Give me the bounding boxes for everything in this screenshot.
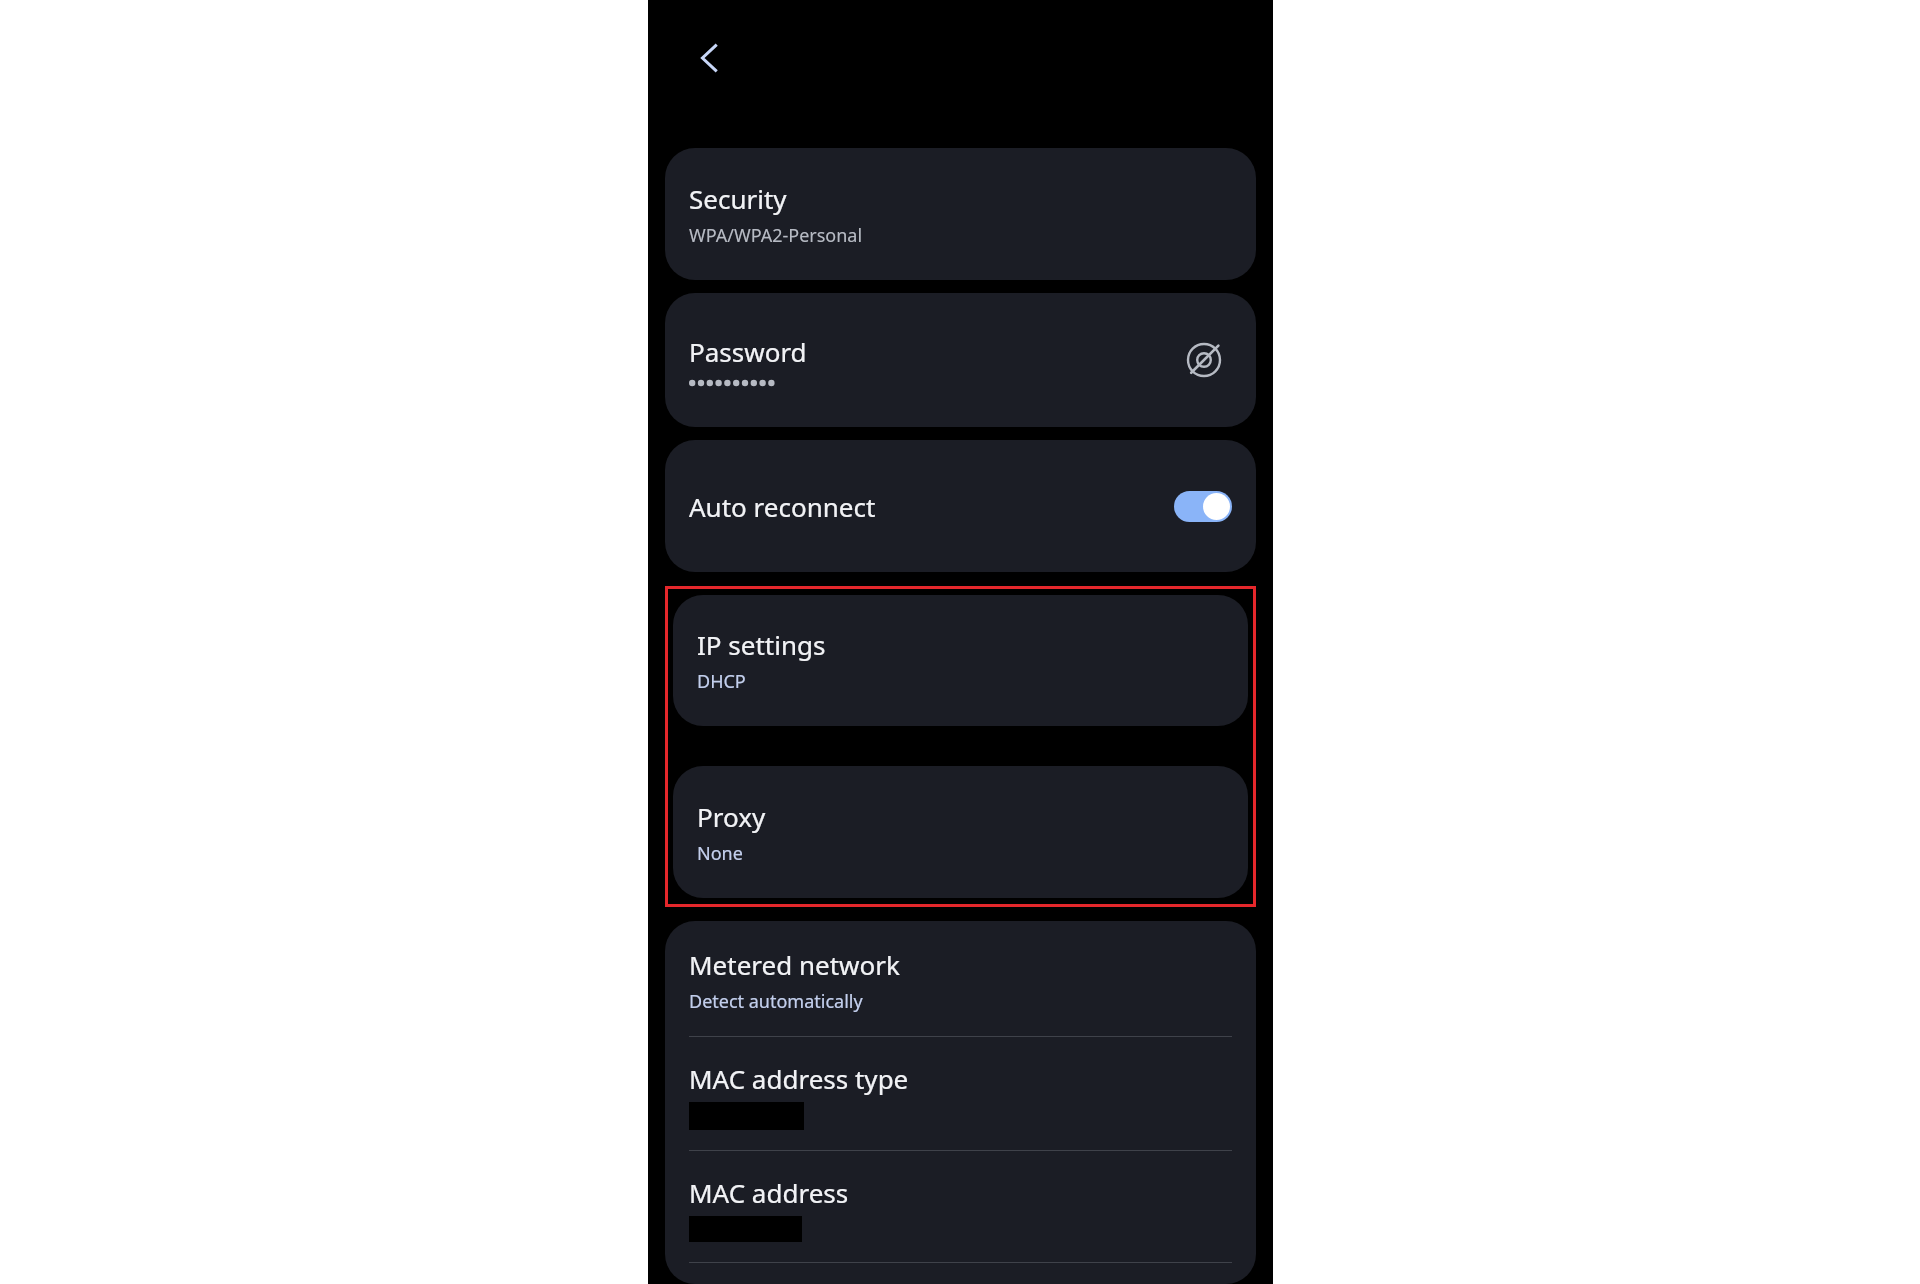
staticText: None: [697, 841, 743, 866]
button[interactable]: Metered network: [665, 921, 1256, 1036]
button[interactable]: Proxy: [673, 766, 1248, 898]
staticText: Security: [689, 181, 787, 216]
staticText: MAC address type: [689, 1061, 909, 1096]
staticText: Metered network: [689, 947, 900, 982]
button[interactable]: IP settings: [673, 595, 1248, 726]
button[interactable]: Security: [665, 148, 1256, 280]
staticText: Detect automatically: [689, 989, 863, 1014]
button[interactable]: Show password: [1176, 332, 1232, 388]
button[interactable]: MAC address: [665, 1151, 1256, 1262]
staticText: Proxy: [697, 799, 766, 834]
staticText: MAC address: [689, 1175, 849, 1210]
staticText: Auto reconnect: [689, 489, 876, 524]
staticText: WPA/WPA2-Personal: [689, 223, 863, 248]
button[interactable]: Auto reconnect: [665, 440, 1256, 572]
staticText: IP settings: [697, 627, 826, 662]
button[interactable]: MAC address type: [665, 1037, 1256, 1150]
button[interactable]: Password: [665, 293, 1256, 427]
staticText: DHCP: [697, 669, 746, 694]
staticText: Password: [689, 334, 807, 369]
button[interactable]: Back: [672, 20, 748, 96]
